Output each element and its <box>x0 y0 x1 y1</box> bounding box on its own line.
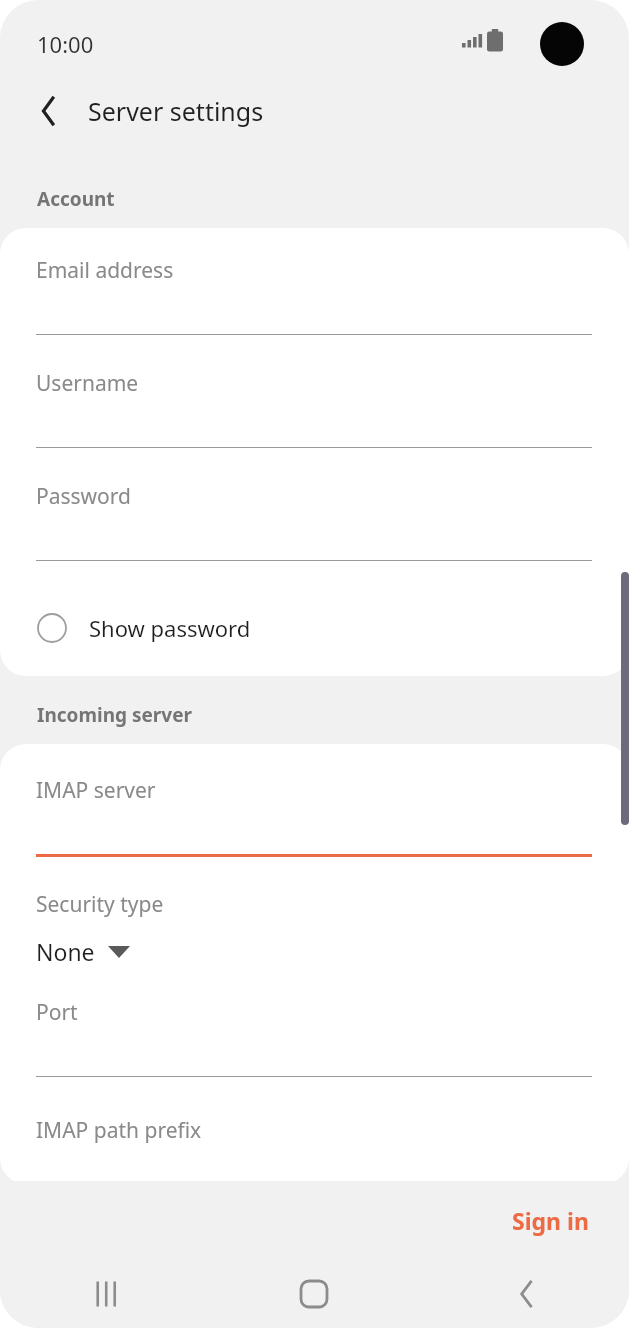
staticText: Security type <box>36 890 164 919</box>
staticText: Password <box>36 482 131 511</box>
button[interactable]: Home <box>209 1259 419 1328</box>
button[interactable]: Port <box>0 984 629 1088</box>
button[interactable]: Sign in <box>498 1195 603 1246</box>
staticText: IMAP path prefix <box>36 1116 202 1145</box>
button[interactable]: Password <box>0 468 629 572</box>
staticText: None <box>36 936 95 967</box>
button[interactable]: Back <box>22 88 70 134</box>
button[interactable]: Recents <box>0 1259 209 1328</box>
button[interactable]: Username <box>0 355 629 459</box>
staticText: Username <box>36 369 139 398</box>
button[interactable]: Email address <box>0 242 629 346</box>
staticText: Account <box>37 186 115 212</box>
staticText: IMAP server <box>36 776 156 805</box>
button[interactable]: Show password <box>0 592 629 664</box>
staticText: Email address <box>36 256 174 285</box>
staticText: Incoming server <box>37 702 192 728</box>
staticText: Server settings <box>88 94 264 128</box>
staticText: Sign in <box>512 1205 589 1236</box>
button[interactable]: IMAP server <box>0 762 629 866</box>
staticText: Port <box>36 998 78 1027</box>
staticText: Show password <box>89 613 251 643</box>
button[interactable]: Back <box>419 1259 629 1328</box>
staticText: 10:00 <box>37 29 94 59</box>
button[interactable]: None <box>30 926 130 976</box>
